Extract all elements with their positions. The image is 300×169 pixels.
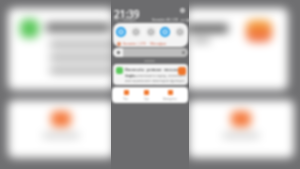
staticText: Билайн | LTE · Мегафон [123,41,167,46]
staticText: Пт, 7 января [114,17,136,22]
staticText: 21:39 [114,7,140,21]
button[interactable]: Включён режим экономии заря… [113,64,188,85]
button[interactable]: Чат [123,90,129,101]
button[interactable]: Quick setting toggle [160,27,170,37]
button[interactable]: Аккаунты [163,90,177,101]
button[interactable]: Quick setting toggle [175,27,185,37]
button[interactable]: Quick setting toggle [146,27,156,37]
staticText: Где [144,97,149,101]
staticText: параметры устройства [125,83,163,85]
staticText: Аккаунты [163,97,177,101]
staticText: Чтобы сэкономить заряд, отключите [125,73,186,78]
button[interactable]: Quick setting toggle [131,27,141,37]
button[interactable]: Quick setting toggle [116,27,126,37]
staticText: Включён режим экономии заря… [125,67,188,79]
staticText: Билайн 4G LTE ⊿⊿ ▮ [152,17,189,22]
button[interactable]: Settings [180,8,185,13]
staticText: Чат [123,97,129,101]
staticText: или ограничьте некоторые функции [125,78,185,83]
button[interactable]: Где [144,90,149,101]
